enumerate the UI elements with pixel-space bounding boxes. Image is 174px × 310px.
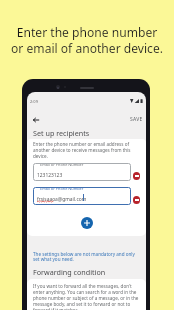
staticText: frsisaaoa@gmail.com xyxy=(37,196,87,203)
staticText: Email or Phone Number xyxy=(40,186,84,191)
button[interactable]: Email or Phone Number xyxy=(33,187,131,205)
staticText: 123123123 xyxy=(37,172,63,179)
button[interactable]: Add recipient xyxy=(81,217,93,229)
staticText: The settings below are not mandatory and… xyxy=(33,251,140,263)
button[interactable]: Email or Phone Number xyxy=(33,163,131,181)
button[interactable]: SAVE xyxy=(128,114,144,125)
staticText: Forwarding condition xyxy=(33,267,106,277)
staticText: Enter the phone number or email address … xyxy=(33,141,140,159)
button[interactable]: Navigate back xyxy=(30,114,41,125)
staticText: Email or Phone Number xyxy=(40,162,84,167)
button[interactable]: Remove recipient xyxy=(133,196,140,204)
staticText: SAVE xyxy=(130,116,143,123)
staticText: If you want to forward all the messages,… xyxy=(33,283,140,310)
staticText: Enter the phone number or email of anoth… xyxy=(11,24,163,56)
staticText: 2:09 xyxy=(30,99,38,104)
staticText: Set up recipients xyxy=(33,128,90,138)
button[interactable]: Remove recipient xyxy=(133,172,140,180)
